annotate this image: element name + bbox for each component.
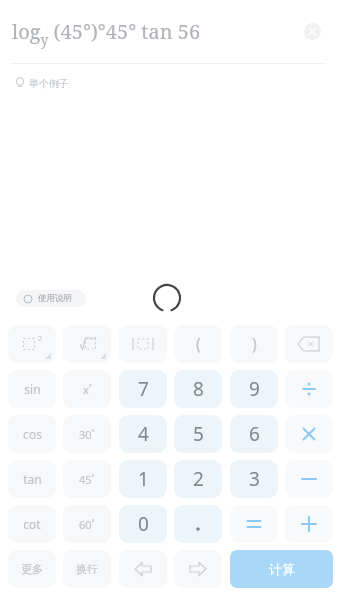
button[interactable]: Clear xyxy=(304,23,321,40)
button[interactable]: x° xyxy=(63,370,111,408)
staticText: ( xyxy=(196,333,201,355)
staticText: 5 xyxy=(193,421,204,447)
button[interactable]: 5 xyxy=(174,415,222,453)
button[interactable]: 8 xyxy=(174,370,222,408)
button[interactable]: 0 xyxy=(119,505,167,543)
staticText: tan xyxy=(23,471,42,487)
button[interactable]: 更多 xyxy=(8,550,56,588)
staticText: cos xyxy=(23,426,42,442)
button[interactable]: Decimal point xyxy=(174,505,222,543)
staticText: 45° xyxy=(79,472,95,487)
staticText: 更多 xyxy=(21,562,43,576)
button[interactable]: ) xyxy=(230,325,278,363)
button[interactable]: 3 xyxy=(230,460,278,498)
button[interactable]: 使用说明 xyxy=(16,290,86,307)
button[interactable]: 4 xyxy=(119,415,167,453)
button[interactable]: Equals xyxy=(230,505,278,543)
staticText: 1 xyxy=(138,466,149,492)
staticText: x° xyxy=(83,382,92,397)
button[interactable]: cot xyxy=(8,505,56,543)
staticText: 8 xyxy=(193,376,204,402)
staticText: 使用说明 xyxy=(38,293,72,304)
staticText: 9 xyxy=(249,376,260,402)
staticText: 2 xyxy=(193,466,204,492)
button[interactable]: Move right xyxy=(174,550,222,588)
staticText: 3 xyxy=(249,466,260,492)
button[interactable]: Divide xyxy=(285,370,333,408)
button[interactable]: Minus xyxy=(285,460,333,498)
staticText: 7 xyxy=(138,376,149,402)
staticText: 6 xyxy=(249,421,260,447)
button[interactable]: 60° xyxy=(63,505,111,543)
button[interactable]: tan xyxy=(8,460,56,498)
staticText: 4 xyxy=(138,421,149,447)
button[interactable]: 1 xyxy=(119,460,167,498)
button[interactable]: 45° xyxy=(63,460,111,498)
button[interactable]: cos xyxy=(8,415,56,453)
staticText: cot xyxy=(23,516,41,532)
staticText: 计算 xyxy=(269,561,295,577)
button[interactable]: x squared xyxy=(8,325,56,363)
staticText: 0 xyxy=(138,511,149,537)
button[interactable]: 30° xyxy=(63,415,111,453)
button[interactable]: 7 xyxy=(119,370,167,408)
button[interactable]: 举个例子 xyxy=(11,74,121,92)
button[interactable]: 2 xyxy=(174,460,222,498)
button[interactable]: Multiply xyxy=(285,415,333,453)
staticText: 2 xyxy=(38,334,43,344)
staticText: 30° xyxy=(79,427,95,442)
button[interactable]: Plus xyxy=(285,505,333,543)
button[interactable]: 计算 xyxy=(230,550,333,588)
button[interactable]: Move left xyxy=(119,550,167,588)
staticText: 举个例子 xyxy=(29,77,69,90)
button[interactable]: 6 xyxy=(230,415,278,453)
staticText: 换行 xyxy=(76,562,98,576)
button[interactable]: ( xyxy=(174,325,222,363)
button[interactable]: Square root xyxy=(63,325,111,363)
button[interactable]: Absolute value xyxy=(119,325,167,363)
button[interactable]: sin xyxy=(8,370,56,408)
staticText: ) xyxy=(252,333,257,355)
staticText: sin xyxy=(24,381,41,397)
button[interactable]: 换行 xyxy=(63,550,111,588)
button[interactable]: 9 xyxy=(230,370,278,408)
staticText: 60° xyxy=(79,517,95,532)
button[interactable]: Backspace xyxy=(285,325,333,363)
staticText: logy (45°)°45° tan 56 xyxy=(12,18,201,49)
